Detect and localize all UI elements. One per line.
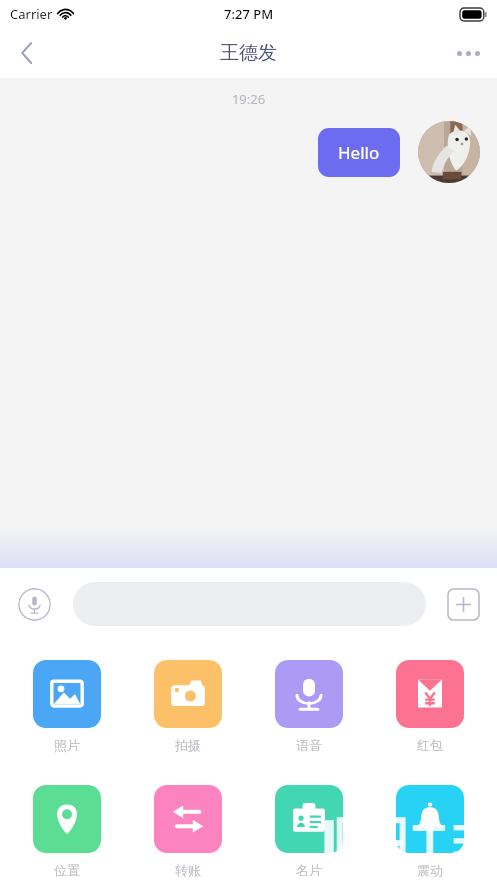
staticText: 红包 [417, 737, 443, 753]
button[interactable]: More functions [448, 589, 479, 620]
button[interactable]: Avatar [418, 121, 480, 183]
button[interactable]: Back [0, 28, 54, 78]
staticText: 王德发 [220, 41, 277, 65]
other: Camera [154, 660, 222, 728]
staticText: 震动 [417, 862, 443, 878]
button[interactable]: Red packet [385, 660, 475, 753]
staticText: 转账 [175, 862, 201, 878]
other: Transfer [154, 785, 222, 853]
staticText: 语音 [296, 737, 322, 753]
staticText: 7:27 PM [224, 5, 274, 23]
staticText: Carrier [10, 5, 53, 23]
button[interactable]: Hello [318, 128, 400, 177]
other: Nudge [396, 785, 464, 853]
other: Voice [275, 660, 343, 728]
staticText: Hello [338, 141, 380, 164]
other: Red packet [396, 660, 464, 728]
button[interactable]: Location [22, 785, 112, 878]
staticText: 19:26 [0, 90, 497, 108]
other: Location [33, 785, 101, 853]
staticText: 位置 [54, 862, 80, 878]
staticText: 拍摄 [175, 737, 201, 753]
button[interactable]: Transfer [143, 785, 233, 878]
button[interactable]: Voice input [18, 588, 51, 621]
button[interactable]: Voice [264, 660, 354, 753]
staticText: 名片 [296, 862, 322, 878]
other: Business card [275, 785, 343, 853]
button[interactable]: Nudge [385, 785, 475, 878]
button[interactable]: Camera [143, 660, 233, 753]
button[interactable]: Business card [264, 785, 354, 878]
button[interactable]: More options [439, 28, 497, 78]
other: Photo [33, 660, 101, 728]
button[interactable]: Photo [22, 660, 112, 753]
staticText: 照片 [54, 737, 80, 753]
